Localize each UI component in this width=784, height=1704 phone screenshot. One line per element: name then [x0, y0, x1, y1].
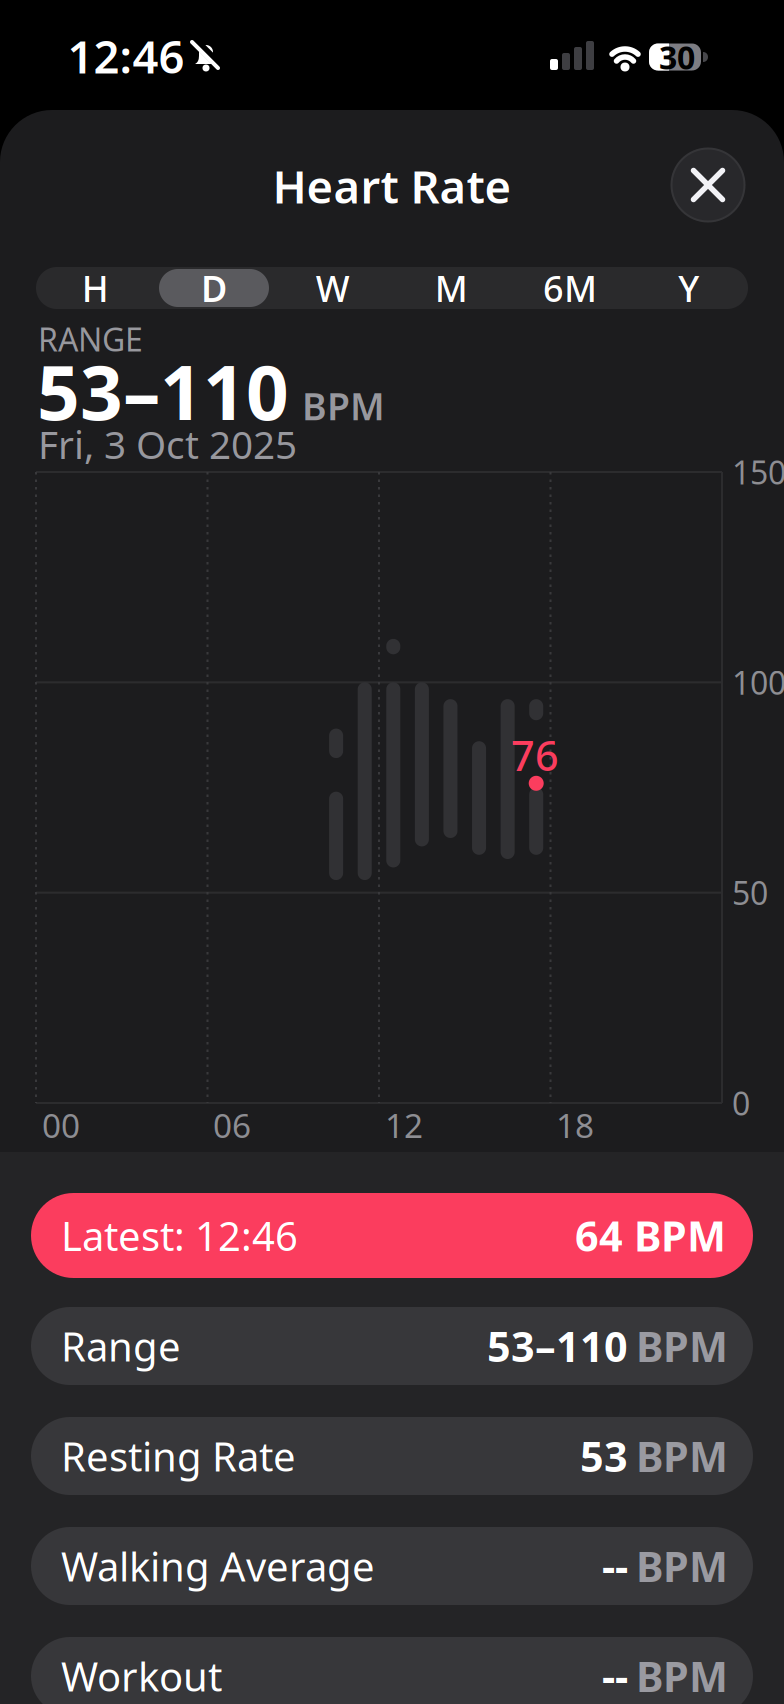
- staticText: 12:46: [67, 26, 184, 86]
- staticText: BPM: [636, 1649, 728, 1703]
- staticText: 0: [732, 1082, 750, 1124]
- staticText: Resting Rate: [61, 1429, 296, 1482]
- button[interactable]: W: [273, 267, 392, 309]
- staticText: 30: [659, 36, 695, 78]
- staticText: 06: [213, 1103, 251, 1147]
- staticText: BPM: [302, 381, 385, 431]
- staticText: 150: [732, 451, 784, 493]
- staticText: 53–110: [487, 1319, 628, 1373]
- staticText: Workout: [61, 1649, 222, 1702]
- staticText: Y: [678, 264, 699, 312]
- staticText: BPM: [636, 1429, 728, 1483]
- staticText: Range: [61, 1319, 181, 1372]
- button[interactable]: M: [392, 267, 511, 309]
- staticText: 64 BPM: [575, 1208, 726, 1263]
- staticText: 53–110: [37, 341, 289, 441]
- staticText: Fri, 3 Oct 2025: [38, 418, 297, 470]
- staticText: --: [602, 1649, 628, 1703]
- button[interactable]: Close: [671, 148, 744, 221]
- button[interactable]: Y: [629, 267, 748, 309]
- button[interactable]: Range: [31, 1307, 753, 1385]
- staticText: H: [82, 264, 109, 312]
- staticText: M: [435, 264, 468, 312]
- staticText: W: [316, 264, 350, 312]
- staticText: 76: [511, 728, 559, 782]
- staticText: 53: [580, 1429, 628, 1483]
- button[interactable]: Workout: [31, 1637, 753, 1704]
- staticText: Latest: 12:46: [61, 1209, 298, 1262]
- button[interactable]: Latest: 12:46: [31, 1193, 753, 1278]
- staticText: 50: [732, 871, 768, 914]
- staticText: --: [602, 1539, 628, 1593]
- staticText: 6M: [543, 264, 597, 312]
- staticText: BPM: [636, 1539, 728, 1593]
- button[interactable]: D: [155, 267, 273, 309]
- staticText: D: [201, 264, 227, 312]
- staticText: RANGE: [38, 318, 143, 360]
- staticText: BPM: [636, 1319, 728, 1373]
- staticText: 100: [732, 661, 784, 704]
- staticText: 12: [385, 1103, 423, 1147]
- button[interactable]: H: [36, 267, 155, 309]
- button[interactable]: Walking Average: [31, 1527, 753, 1605]
- staticText: 00: [42, 1103, 80, 1147]
- button[interactable]: 6M: [511, 267, 629, 309]
- staticText: Heart Rate: [272, 156, 511, 216]
- button[interactable]: Resting Rate: [31, 1417, 753, 1495]
- staticText: 18: [556, 1103, 594, 1147]
- staticText: Walking Average: [61, 1539, 375, 1592]
